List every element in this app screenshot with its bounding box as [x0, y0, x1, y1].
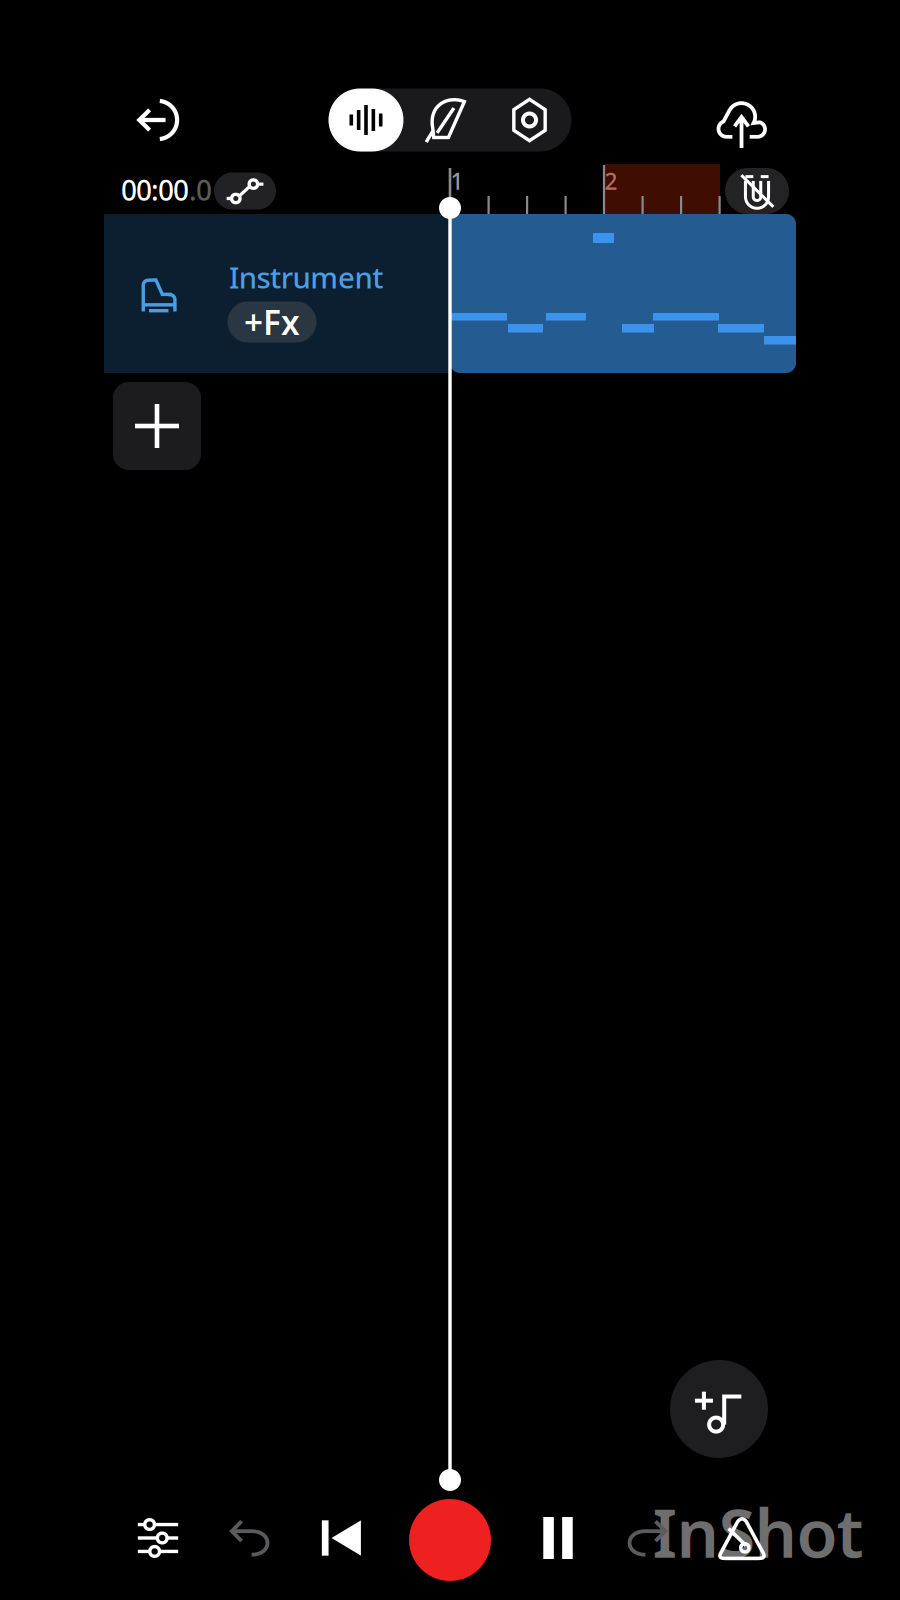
- button[interactable]: Record: [409, 1499, 491, 1581]
- button[interactable]: Instrument track: [104, 214, 450, 373]
- button[interactable]: Upload: [705, 83, 779, 157]
- staticText: 2: [604, 166, 617, 196]
- button[interactable]: Undo: [213, 1502, 285, 1574]
- staticText: InShot: [652, 1488, 863, 1576]
- staticText: +Fx: [244, 300, 300, 344]
- staticText: .0: [189, 171, 212, 209]
- staticText: 1: [450, 166, 463, 196]
- button[interactable]: Pause: [522, 1502, 594, 1574]
- button[interactable]: Metronome: [706, 1504, 778, 1576]
- button[interactable]: Automation: [214, 172, 276, 209]
- button[interactable]: Skip to start: [306, 1502, 378, 1574]
- button[interactable]: Snap to grid: [725, 168, 789, 214]
- button[interactable]: Add instrument: [670, 1360, 768, 1458]
- button[interactable]: Tracks: [328, 88, 403, 151]
- button[interactable]: Redo: [612, 1502, 684, 1574]
- button[interactable]: Lyrics: [403, 88, 487, 151]
- button[interactable]: Mixer: [122, 1502, 194, 1574]
- staticText: 00:00: [121, 171, 189, 209]
- button[interactable]: Settings: [487, 88, 571, 151]
- button[interactable]: Add track: [113, 382, 201, 470]
- button[interactable]: Exit project: [121, 83, 195, 157]
- staticText: Instrument: [229, 257, 383, 296]
